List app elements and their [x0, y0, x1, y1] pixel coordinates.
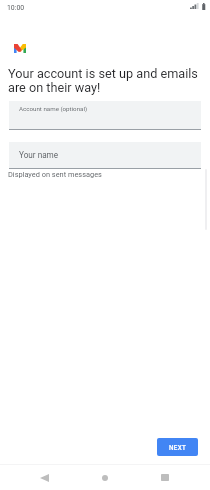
- button[interactable]: Your name: [9, 142, 201, 169]
- staticText: Your account is set up and emails are on…: [8, 66, 204, 95]
- button[interactable]: Recent apps: [147, 465, 183, 490]
- button[interactable]: Home: [87, 465, 123, 490]
- button[interactable]: Account name (optional): [9, 101, 201, 130]
- staticText: NEXT: [169, 444, 187, 451]
- staticText: 10:00: [7, 4, 25, 12]
- button[interactable]: Back: [26, 465, 62, 490]
- staticText: Account name (optional): [19, 105, 88, 112]
- button[interactable]: NEXT: [157, 438, 198, 456]
- staticText: Displayed on sent messages: [8, 170, 102, 179]
- staticText: Your name: [19, 150, 59, 160]
